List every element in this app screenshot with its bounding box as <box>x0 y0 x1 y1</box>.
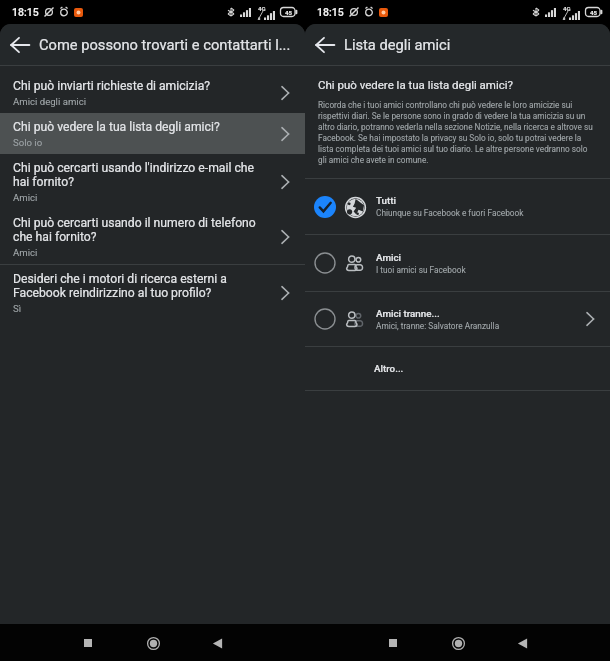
staticText: Amici <box>13 192 38 203</box>
button[interactable]: Back <box>312 32 338 58</box>
staticText: 45 <box>285 9 292 16</box>
button[interactable]: Back <box>509 630 535 656</box>
staticText: Tutti <box>376 195 397 206</box>
staticText: Amici tranne... <box>376 308 440 319</box>
button[interactable]: Chi può inviarti richieste di amicizia? <box>0 66 305 113</box>
button[interactable]: Home <box>445 630 471 656</box>
staticText: Chi può inviarti richieste di amicizia? <box>13 79 211 93</box>
button[interactable]: Tutti <box>305 179 610 234</box>
staticText: Chi può vedere la tua lista degli amici? <box>13 120 220 134</box>
button[interactable]: Amici <box>305 235 610 291</box>
staticText: Amici, tranne: Salvatore Aranzulla <box>376 321 500 331</box>
staticText: Altro... <box>374 363 404 374</box>
other: Back <box>10 35 30 55</box>
other: Back <box>315 35 335 55</box>
button[interactable]: Amici tranne... <box>305 292 610 346</box>
staticText: 18:15 <box>12 6 39 18</box>
staticText: Lista degli amici <box>344 36 451 53</box>
staticText: Amici <box>13 247 38 258</box>
button[interactable]: Chi può cercarti usando il numero di tel… <box>0 209 305 264</box>
button[interactable]: Altro... <box>305 347 610 390</box>
staticText: Sì <box>13 303 22 314</box>
staticText: Chiunque su Facebook e fuori Facebook <box>376 208 524 218</box>
staticText: Chi può cercarti usando l'indirizzo e-ma… <box>13 161 270 189</box>
staticText: 4G <box>563 5 571 12</box>
staticText: Come possono trovarti e contattarti l... <box>39 36 291 53</box>
staticText: Desideri che i motori di ricerca esterni… <box>13 272 270 300</box>
button[interactable]: Back <box>7 32 33 58</box>
staticText: Solo io <box>13 137 43 148</box>
staticText: Ricorda che i tuoi amici controllano chi… <box>318 100 597 165</box>
button[interactable]: Recents <box>380 630 406 656</box>
button[interactable]: Chi può cercarti usando l'indirizzo e-ma… <box>0 154 305 209</box>
staticText: Chi può vedere la tua lista degli amici? <box>318 78 513 91</box>
button[interactable]: Chi può vedere la tua lista degli amici? <box>0 113 305 154</box>
button[interactable]: Recents <box>75 630 101 656</box>
staticText: 45 <box>590 9 597 16</box>
staticText: 18:15 <box>317 6 344 18</box>
staticText: Amici degli amici <box>13 96 86 107</box>
staticText: 4G <box>258 5 266 12</box>
staticText: I tuoi amici su Facebook <box>376 265 466 275</box>
button[interactable]: Home <box>140 630 166 656</box>
button[interactable]: Back <box>204 630 230 656</box>
staticText: Amici <box>376 252 402 263</box>
staticText: Chi può cercarti usando il numero di tel… <box>13 216 270 244</box>
button[interactable]: Desideri che i motori di ricerca esterni… <box>0 265 305 320</box>
